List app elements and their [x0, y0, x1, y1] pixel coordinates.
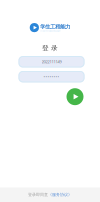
button[interactable]: 登录即同意 — [0, 187, 100, 202]
button[interactable]: Log in — [66, 88, 83, 105]
staticText: 2022111149 — [41, 59, 61, 64]
staticText: 学生工程能力 — [40, 23, 70, 30]
staticText: •••••••• — [43, 74, 59, 79]
staticText: 登录即同意 — [28, 192, 48, 197]
staticText: STUDENT ENGINEERING ABILITY — [40, 30, 61, 32]
staticText: 登 录 — [42, 44, 58, 52]
staticText: 《服务协议》 — [48, 192, 72, 197]
